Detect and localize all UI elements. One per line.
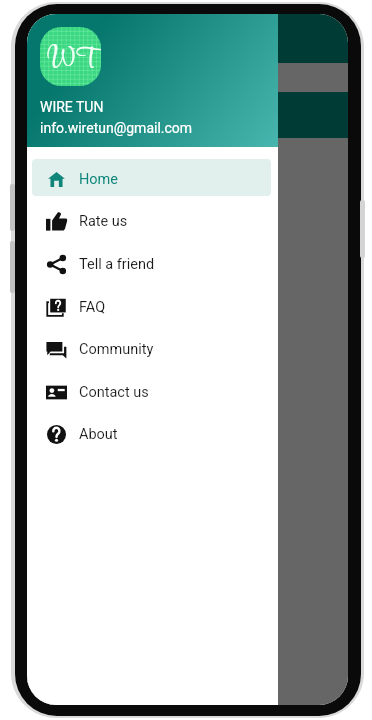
other: About — [46, 425, 67, 444]
staticText: Contact us — [79, 384, 149, 401]
staticText: Home — [79, 171, 119, 188]
button[interactable]: Community — [27, 328, 278, 371]
button[interactable]: Rate us — [27, 200, 278, 243]
other: FAQ — [46, 298, 67, 317]
other: Community — [46, 340, 67, 359]
button[interactable]: Contact us — [27, 371, 278, 414]
staticText: Tell a friend — [79, 256, 155, 273]
other: Home — [46, 170, 67, 189]
button[interactable]: Tell a friend — [27, 243, 278, 286]
staticText: WT — [47, 38, 96, 81]
button[interactable]: WT — [27, 14, 278, 147]
staticText: info.wiretun@gmail.com — [40, 120, 193, 136]
other: Contact us — [46, 383, 67, 402]
staticText: FAQ — [79, 299, 106, 316]
staticText: Community — [79, 341, 154, 358]
staticText: About — [79, 426, 118, 443]
button[interactable]: Home — [27, 158, 278, 201]
other: Rate us — [46, 212, 67, 231]
staticText: WIRE TUN — [40, 99, 104, 115]
other: Tell a friend — [46, 255, 67, 274]
button[interactable]: FAQ — [27, 286, 278, 329]
staticText: Rate us — [79, 213, 128, 230]
button[interactable]: About — [27, 413, 278, 456]
